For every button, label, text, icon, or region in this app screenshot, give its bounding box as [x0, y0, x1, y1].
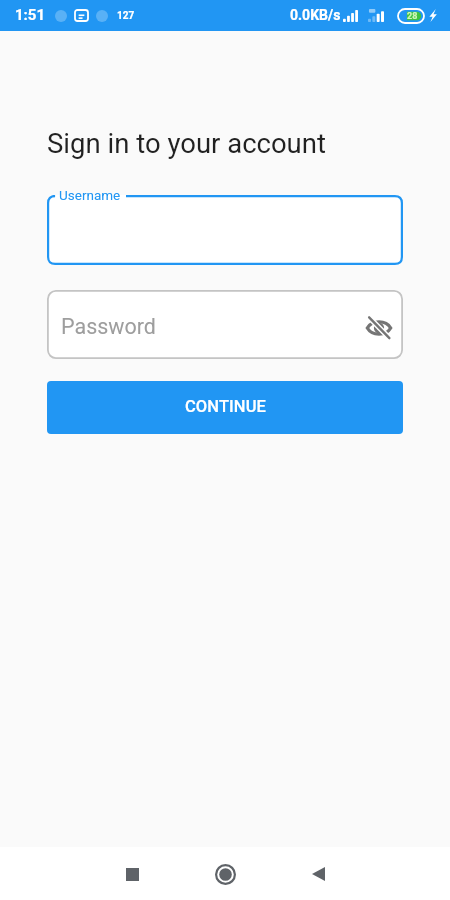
staticText: Password — [61, 314, 156, 339]
staticText: Sign in to your account — [47, 127, 326, 159]
button[interactable]: Password — [47, 290, 403, 359]
staticText: 127 — [117, 10, 135, 22]
button[interactable]: Home — [201, 850, 249, 898]
button[interactable]: Back — [294, 850, 342, 898]
button[interactable]: CONTINUE — [47, 381, 403, 434]
staticText: 28 — [407, 11, 418, 22]
staticText: CONTINUE — [185, 397, 266, 416]
button[interactable]: Recent apps — [108, 850, 156, 898]
staticText: 1:51 — [15, 6, 46, 24]
button[interactable]: Username — [47, 195, 403, 265]
button[interactable]: Toggle password visibility — [363, 312, 395, 344]
staticText: Username — [59, 187, 121, 203]
staticText: 0.0KB/s — [290, 7, 341, 23]
